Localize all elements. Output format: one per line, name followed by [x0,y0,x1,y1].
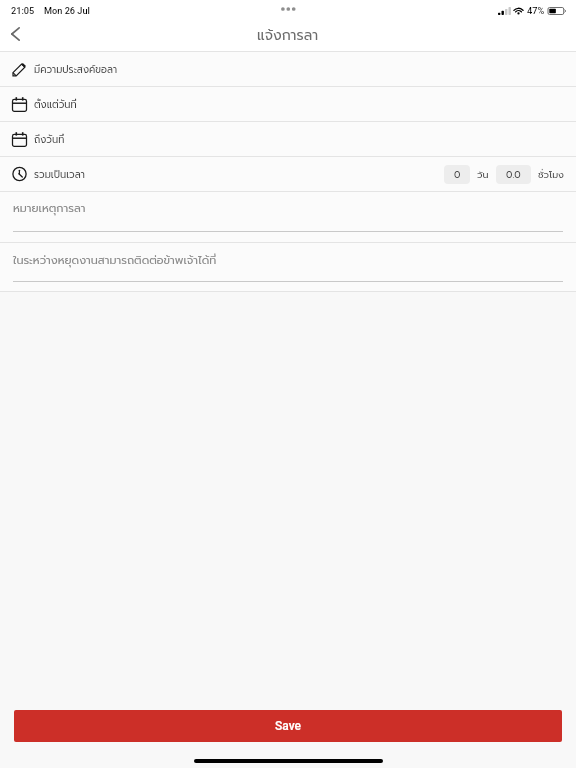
button[interactable]: Save [14,710,562,742]
button[interactable]: ในระหว่างหยุดงานสามารถติดต่อข้าพเจ้าได้ท… [0,243,576,282]
staticText: ถึงวันที่ [34,132,65,147]
staticText: 0.0 [506,168,521,182]
button[interactable]: ตั้งแต่วันที่ [0,87,576,122]
button[interactable]: มีความประสงค์ขอลา [0,52,576,87]
staticText: Mon 26 Jul [44,5,90,16]
staticText: ชั่วโมง [538,168,565,182]
staticText: มีความประสงค์ขอลา [34,62,118,77]
button[interactable]: ถึงวันที่ [0,122,576,157]
staticText: รวมเป็นเวลา [34,167,85,182]
staticText: ในระหว่างหยุดงานสามารถติดต่อข้าพเจ้าได้ท… [13,252,217,269]
staticText: ตั้งแต่วันที่ [34,97,77,112]
staticText: Save [275,719,301,733]
staticText: 47% [527,5,545,16]
staticText: วัน [477,168,489,182]
staticText: 0 [454,168,461,182]
button[interactable]: Back [0,20,31,51]
staticText: หมายเหตุการลา [13,200,86,217]
button[interactable]: รวมเป็นเวลา [0,157,576,192]
button[interactable]: หมายเหตุการลา [0,192,576,232]
staticText: แจ้งการลา [257,25,319,46]
staticText: 21:05 [11,5,35,16]
